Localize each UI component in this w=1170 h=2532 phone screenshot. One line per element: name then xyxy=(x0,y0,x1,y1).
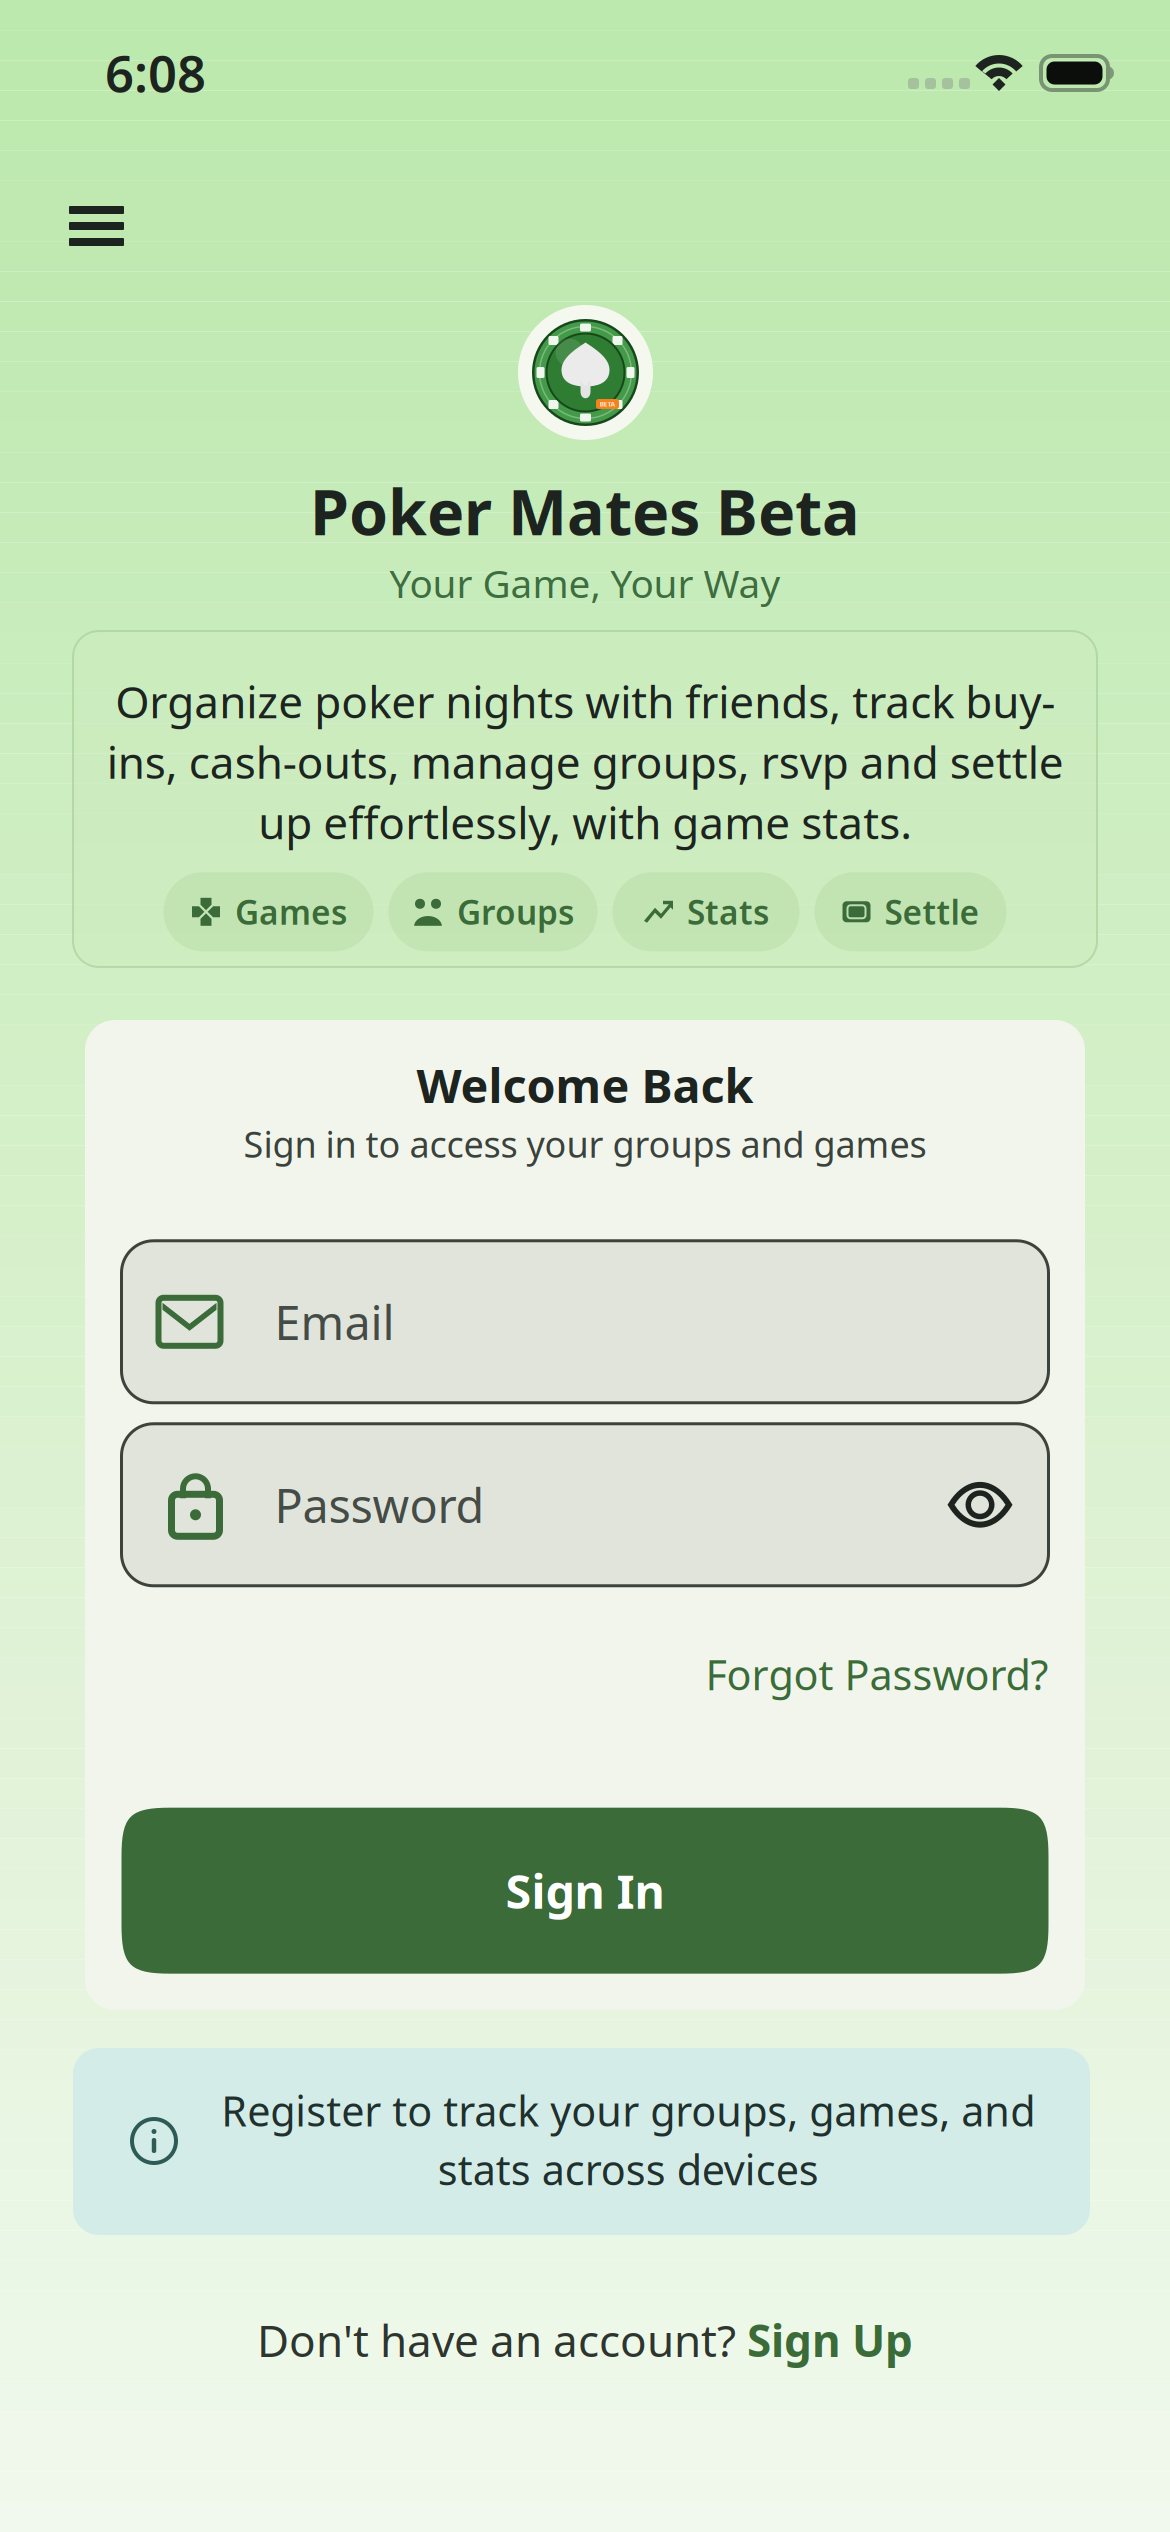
staticText: Poker Mates Beta xyxy=(310,469,860,553)
staticText: Your Game, Your Way xyxy=(389,557,780,609)
staticText: BETA xyxy=(599,400,615,408)
button[interactable]: Forgot Password? xyxy=(705,1647,1048,1702)
staticText: Welcome Back xyxy=(416,1054,753,1116)
staticText: Sign in to access your groups and games xyxy=(243,1120,926,1168)
staticText: Games xyxy=(235,890,347,934)
button[interactable]: Sign In xyxy=(121,1808,1048,1974)
button[interactable]: Sign Up xyxy=(747,2311,913,2369)
staticText: Sign In xyxy=(505,1860,664,1922)
staticText: Register to track your groups, games, an… xyxy=(221,2083,1035,2197)
staticText: 6:08 xyxy=(105,39,206,106)
staticText: Stats xyxy=(687,890,769,934)
staticText: Sign Up xyxy=(747,2311,913,2369)
staticText: Settle xyxy=(884,890,979,934)
staticText: Don't have an account? xyxy=(257,2311,747,2369)
staticText: Password xyxy=(274,1474,484,1536)
staticText: Email xyxy=(274,1291,394,1353)
staticText: Organize poker nights with friends, trac… xyxy=(106,672,1063,851)
button[interactable]: Menu xyxy=(47,180,146,272)
staticText: Forgot Password? xyxy=(705,1647,1048,1702)
staticText: Groups xyxy=(457,890,574,934)
button[interactable]: Show password xyxy=(947,1462,1048,1547)
